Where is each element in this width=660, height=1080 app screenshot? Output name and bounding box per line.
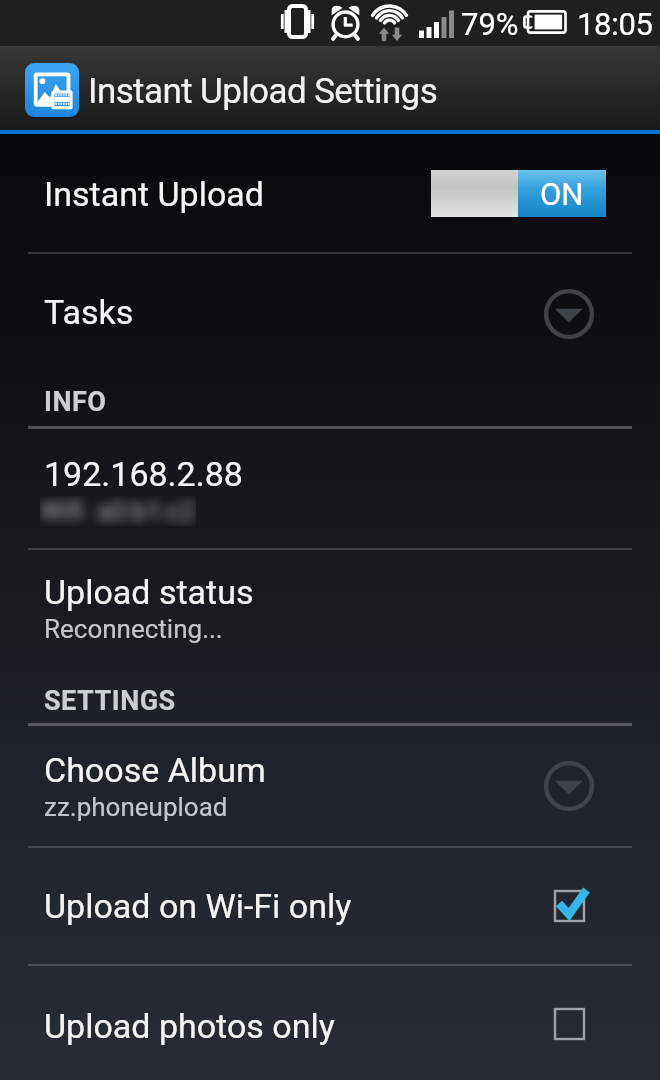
button[interactable]: Upload status xyxy=(0,550,660,669)
button[interactable]: Upload photos only xyxy=(0,966,660,1080)
staticText: Tasks xyxy=(44,292,134,332)
staticText: ON xyxy=(540,176,584,212)
staticText: Reconnecting... xyxy=(44,614,223,644)
button[interactable]: Unchecked xyxy=(547,1001,593,1047)
staticText: SETTINGS xyxy=(44,685,176,717)
button[interactable]: Instant Upload xyxy=(0,135,660,252)
staticText: INFO xyxy=(44,386,107,418)
button[interactable]: Instant Upload on xyxy=(431,170,606,217)
staticText: Choose Album xyxy=(44,750,266,790)
staticText: 79% xyxy=(461,6,519,42)
staticText: 18:05 xyxy=(577,6,653,42)
staticText: Upload status xyxy=(44,572,254,612)
button[interactable]: Choose Album xyxy=(0,726,660,846)
button[interactable]: Checked xyxy=(547,883,593,929)
staticText: Upload on Wi-Fi only xyxy=(44,886,352,926)
button[interactable]: Expand xyxy=(544,761,594,811)
staticText: Instant Upload xyxy=(44,174,264,214)
button[interactable]: Instant Upload xyxy=(25,63,79,117)
button[interactable]: Upload on Wi-Fi only xyxy=(0,848,660,964)
button[interactable]: Tasks xyxy=(0,254,660,373)
staticText: zz.phoneupload xyxy=(44,792,228,822)
staticText: Wifi a0:b1:c2 xyxy=(40,496,196,526)
staticText: Upload photos only xyxy=(44,1006,335,1046)
staticText: 192.168.2.88 xyxy=(44,454,243,494)
button[interactable]: Expand xyxy=(544,289,594,339)
button[interactable]: 192.168.2.88 xyxy=(0,429,660,548)
staticText: Instant Upload Settings xyxy=(88,71,438,112)
